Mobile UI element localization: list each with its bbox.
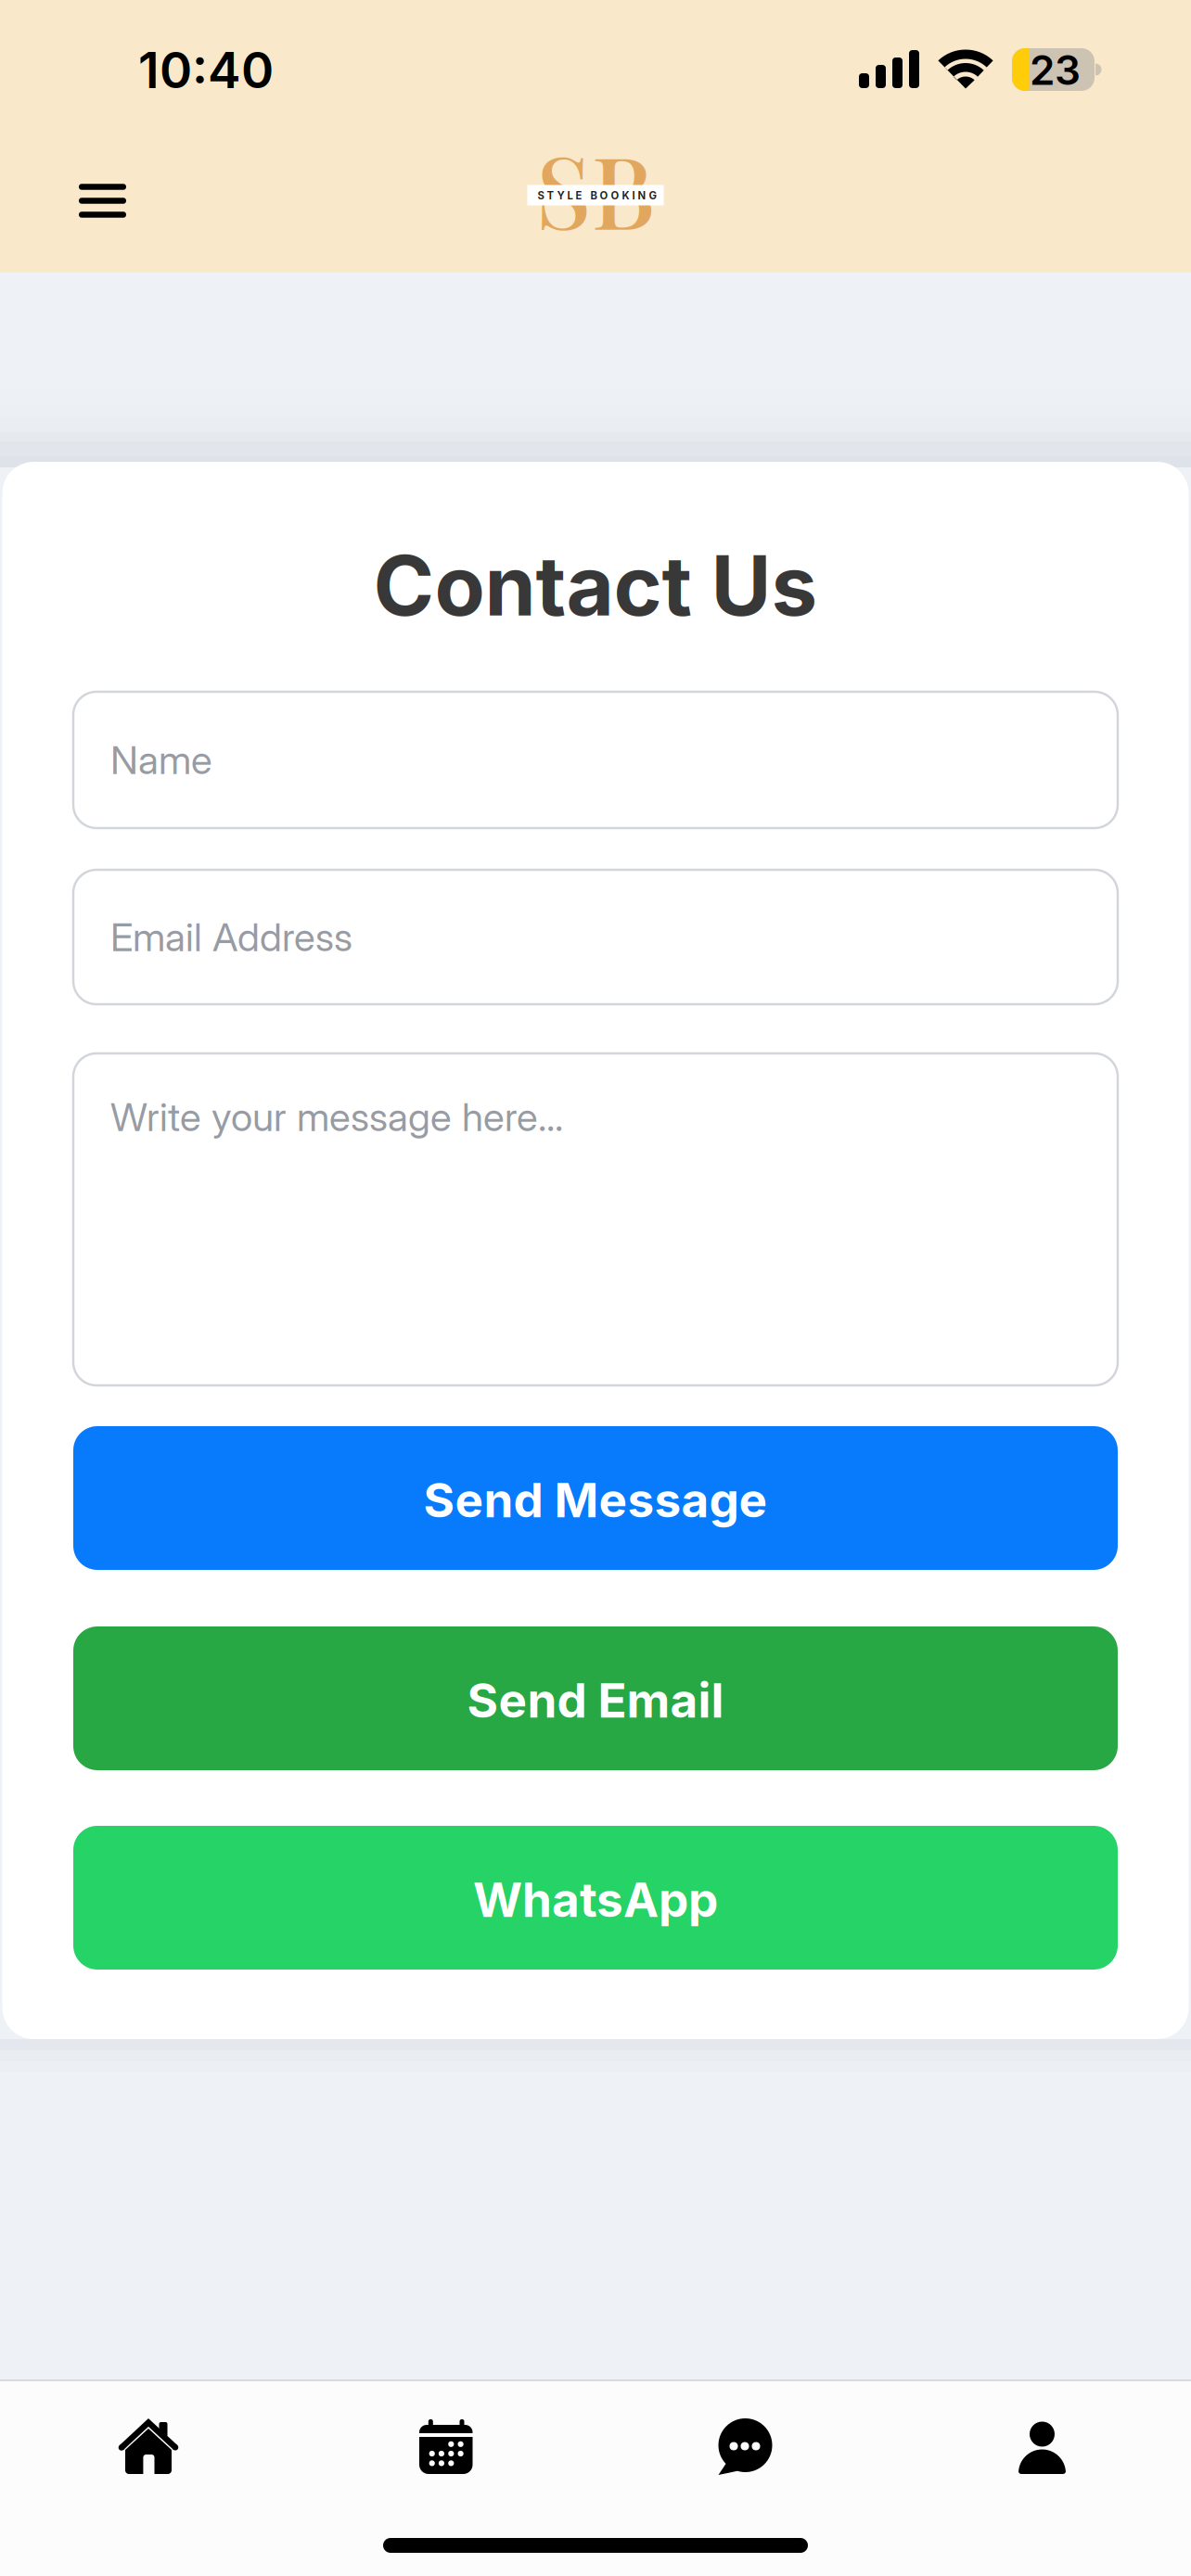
button[interactable]: Bookings (419, 2419, 473, 2475)
button[interactable]: Send Email (73, 1626, 1118, 1770)
staticText: Contact Us (373, 536, 818, 635)
staticText: SB (536, 121, 655, 255)
staticText: Write your message here... (110, 1093, 563, 1140)
staticText: 10:40 (138, 40, 274, 100)
button[interactable]: Home (119, 2419, 179, 2475)
staticText: Send Email (467, 1671, 724, 1729)
staticText: Name (110, 736, 212, 783)
button[interactable]: WhatsApp (73, 1826, 1118, 1970)
button[interactable]: Menu (79, 184, 126, 218)
button[interactable]: Messages (716, 2418, 773, 2476)
staticText: Send Message (423, 1471, 768, 1529)
staticText: Email Address (110, 913, 352, 961)
button[interactable]: Send Message (73, 1426, 1118, 1570)
staticText: S T Y L E B O O K I N G (538, 189, 657, 202)
staticText: 23 (1030, 45, 1081, 95)
button[interactable]: Profile (1018, 2420, 1066, 2474)
staticText: WhatsApp (473, 1871, 718, 1928)
